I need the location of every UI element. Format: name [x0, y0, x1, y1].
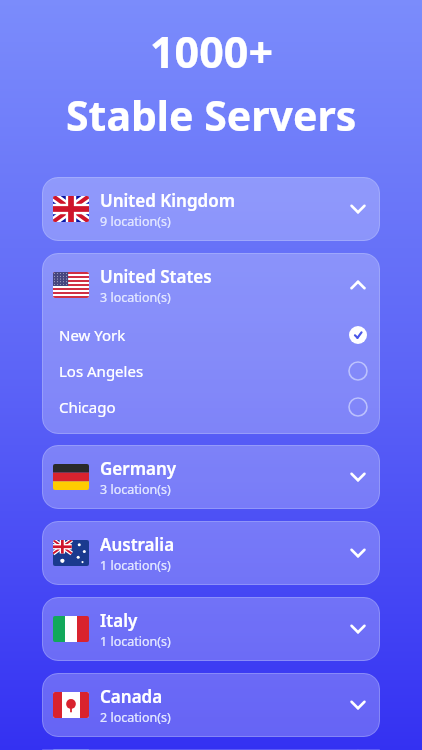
staticText: 1 location(s) — [100, 557, 171, 574]
staticText: Canada — [100, 685, 163, 708]
button[interactable]: Chicago — [42, 389, 380, 425]
staticText: New York — [59, 325, 126, 345]
staticText: Germany — [100, 457, 177, 480]
staticText: Italy — [100, 609, 138, 632]
staticText: 3 location(s) — [100, 481, 171, 498]
button[interactable]: Canada — [42, 673, 380, 737]
button[interactable]: New York — [42, 317, 380, 353]
button[interactable]: Greece — [42, 749, 380, 750]
staticText: 2 location(s) — [100, 709, 171, 726]
staticText: 9 location(s) — [100, 213, 171, 230]
staticText: Chicago — [59, 397, 116, 417]
button[interactable]: Australia — [42, 521, 380, 585]
button[interactable]: United Kingdom — [42, 177, 380, 241]
staticText: Los Angeles — [59, 361, 144, 381]
staticText: Stable Servers — [66, 87, 357, 143]
button[interactable]: Italy — [42, 597, 380, 661]
staticText: Australia — [100, 533, 175, 556]
button[interactable]: United States — [42, 253, 380, 317]
staticText: United States — [100, 265, 212, 288]
button[interactable]: Los Angeles — [42, 353, 380, 389]
staticText: 3 location(s) — [100, 289, 171, 306]
button[interactable]: Germany — [42, 445, 380, 509]
staticText: United Kingdom — [100, 189, 236, 212]
staticText: 1000+ — [150, 22, 273, 81]
staticText: 1 location(s) — [100, 633, 171, 650]
